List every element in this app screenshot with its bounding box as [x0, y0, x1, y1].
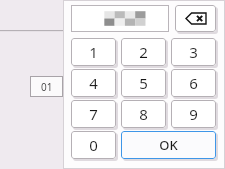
staticText: 4 [89, 73, 98, 93]
button[interactable]: 01 [30, 76, 63, 97]
staticText: 0 [89, 135, 98, 155]
staticText: 3 [189, 42, 198, 62]
button[interactable]: 8 [121, 100, 166, 128]
button[interactable] [71, 5, 169, 32]
button[interactable]: 6 [171, 69, 216, 97]
button[interactable]: 7 [71, 100, 116, 128]
staticText: 5 [139, 73, 148, 93]
button[interactable]: 0 [71, 131, 116, 159]
button[interactable]: 2 [121, 38, 166, 66]
button[interactable]: 1 [71, 38, 116, 66]
staticText: 9 [189, 104, 198, 124]
button[interactable]: OK [121, 131, 216, 159]
button[interactable]: Backspace [175, 5, 216, 32]
staticText: OK [159, 136, 178, 154]
staticText: 8 [139, 104, 148, 124]
staticText: 01 [41, 80, 53, 94]
staticText: 6 [189, 73, 198, 93]
button[interactable]: 5 [121, 69, 166, 97]
button[interactable]: 4 [71, 69, 116, 97]
staticText: 7 [89, 104, 98, 124]
button[interactable]: 9 [171, 100, 216, 128]
staticText: 1 [89, 42, 98, 62]
staticText: 2 [139, 42, 148, 62]
button[interactable]: 3 [171, 38, 216, 66]
